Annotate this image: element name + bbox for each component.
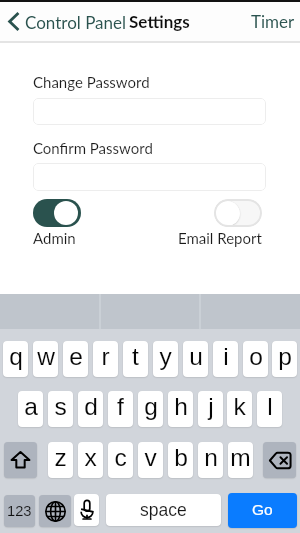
staticText: o	[249, 343, 263, 370]
button[interactable]: r	[93, 341, 118, 377]
button[interactable]: w	[33, 341, 58, 377]
staticText: Timer	[251, 11, 295, 31]
button[interactable]: Email Report toggle off	[214, 199, 262, 227]
button[interactable]: Control Panel	[7, 9, 126, 34]
staticText: q	[9, 343, 23, 370]
staticText: s	[54, 393, 67, 420]
button[interactable]: y	[153, 341, 178, 377]
staticText: 123	[7, 503, 32, 519]
button[interactable]: o	[243, 341, 268, 377]
button[interactable]: a	[18, 391, 43, 427]
button[interactable]: i	[213, 341, 238, 377]
button[interactable]: c	[108, 442, 133, 478]
staticText: m	[230, 444, 251, 471]
button[interactable]: u	[183, 341, 208, 377]
button[interactable]: Change keyboard language	[39, 495, 71, 527]
button[interactable]: m	[228, 442, 253, 478]
staticText: g	[144, 393, 158, 420]
button[interactable]: g	[138, 391, 163, 427]
button[interactable]: Backspace	[263, 442, 296, 478]
button[interactable]: n	[198, 442, 223, 478]
button[interactable]: space	[106, 494, 221, 526]
staticText: n	[204, 444, 218, 471]
staticText: space	[140, 500, 187, 520]
button[interactable]: v	[138, 442, 163, 478]
button[interactable]: l	[257, 391, 282, 427]
staticText: e	[69, 343, 83, 370]
button[interactable]: j	[198, 391, 223, 427]
staticText: p	[278, 343, 292, 370]
staticText: Go	[252, 501, 273, 518]
staticText: t	[132, 343, 139, 370]
staticText: w	[37, 343, 55, 370]
button[interactable]: x	[78, 442, 103, 478]
staticText: r	[101, 343, 110, 370]
button[interactable]: Go	[228, 493, 297, 528]
staticText: y	[159, 343, 172, 370]
staticText: Email Report	[178, 229, 262, 247]
staticText: a	[24, 393, 38, 420]
button[interactable]: Admin toggle on	[33, 199, 81, 227]
staticText: z	[54, 444, 67, 471]
button[interactable]: Dictate	[74, 494, 99, 526]
staticText: u	[189, 343, 203, 370]
staticText: Confirm Password	[33, 139, 153, 157]
button[interactable]: d	[78, 391, 103, 427]
staticText: c	[114, 444, 127, 471]
button[interactable]: b	[168, 442, 193, 478]
staticText: l	[267, 393, 273, 420]
staticText: d	[84, 393, 98, 420]
button[interactable]: Timer	[251, 11, 295, 31]
button[interactable]	[33, 163, 266, 191]
button[interactable]: t	[123, 341, 148, 377]
button[interactable]: s	[48, 391, 73, 427]
staticText: h	[174, 393, 188, 420]
staticText: v	[144, 444, 157, 471]
button[interactable]: h	[168, 391, 193, 427]
button[interactable]: q	[3, 341, 28, 377]
button[interactable]: Shift	[4, 442, 37, 478]
button[interactable]	[33, 98, 266, 125]
staticText: x	[84, 444, 97, 471]
staticText: f	[117, 393, 124, 420]
button[interactable]: f	[108, 391, 133, 427]
staticText: i	[223, 343, 229, 370]
staticText: j	[208, 393, 214, 420]
staticText: Control Panel	[25, 12, 126, 32]
button[interactable]: k	[227, 391, 252, 427]
button[interactable]: e	[63, 341, 88, 377]
staticText: k	[233, 393, 246, 420]
button[interactable]: p	[272, 341, 297, 377]
staticText: Settings	[129, 11, 190, 31]
button[interactable]: z	[48, 442, 73, 478]
button[interactable]: Numbers	[4, 495, 35, 527]
staticText: b	[174, 444, 188, 471]
staticText: Change Password	[33, 73, 150, 91]
staticText: Admin	[33, 229, 76, 247]
